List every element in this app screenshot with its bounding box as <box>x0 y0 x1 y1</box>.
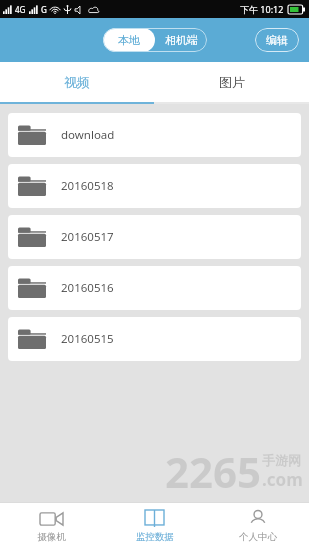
staticText: 图片 <box>219 74 245 90</box>
staticText: 手游网 <box>262 452 301 468</box>
button[interactable]: 相机端 <box>155 28 207 52</box>
staticText: 监控数据 <box>136 531 174 543</box>
staticText: 2265 <box>165 443 262 500</box>
staticText: G <box>41 4 47 15</box>
staticText: download <box>61 127 115 143</box>
staticText: 摄像机 <box>37 531 66 543</box>
staticText: 相机端 <box>165 33 198 47</box>
button[interactable]: 20160517 <box>8 215 301 259</box>
staticText: 视频 <box>64 74 90 90</box>
staticText: 编辑 <box>266 33 288 47</box>
button[interactable]: 本地 <box>103 28 155 52</box>
button[interactable]: 监控数据 <box>103 503 206 550</box>
button[interactable]: 摄像机 <box>0 503 103 550</box>
staticText: .com <box>262 468 303 491</box>
staticText: 20160518 <box>61 178 114 194</box>
button[interactable]: 20160516 <box>8 266 301 310</box>
staticText: 4G <box>15 4 26 15</box>
staticText: 20160517 <box>61 229 114 245</box>
staticText: 20160515 <box>61 331 114 347</box>
button[interactable]: 20160515 <box>8 317 301 361</box>
staticText: 个人中心 <box>239 531 277 543</box>
button[interactable]: 个人中心 <box>206 503 309 550</box>
button[interactable]: 图片 <box>154 62 309 102</box>
button[interactable]: 编辑 <box>255 28 299 52</box>
staticText: 20160516 <box>61 280 114 296</box>
button[interactable]: 视频 <box>0 62 154 102</box>
staticText: 本地 <box>118 33 140 47</box>
button[interactable]: 20160518 <box>8 164 301 208</box>
staticText: 下午 10:12 <box>240 3 284 15</box>
button[interactable]: download <box>8 113 301 157</box>
